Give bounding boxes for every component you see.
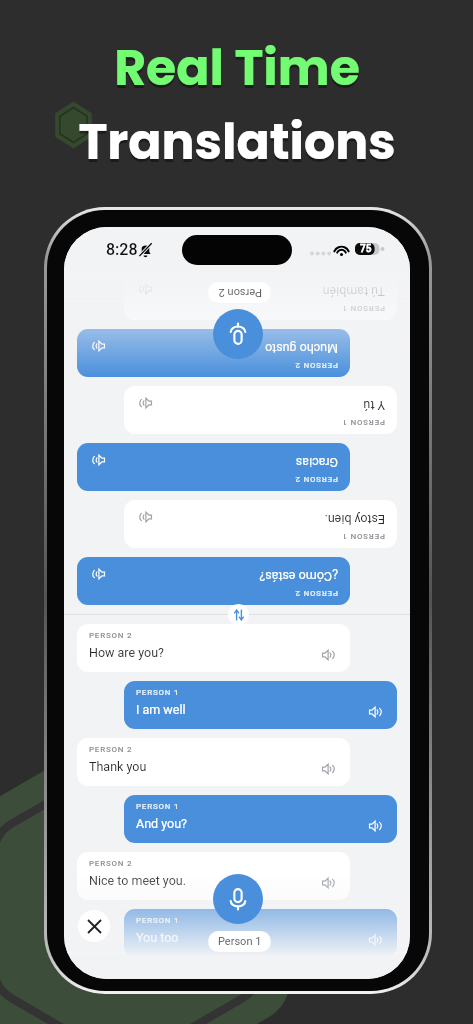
button[interactable]: PERSON 1	[124, 909, 397, 957]
staticText: PERSON 1	[136, 688, 180, 697]
staticText: Real Time	[114, 37, 360, 106]
button[interactable]: PERSON 2	[77, 329, 350, 377]
button[interactable]: Person 2	[208, 282, 271, 303]
staticText: Real Time	[114, 34, 360, 103]
button[interactable]: PERSON 2	[77, 557, 350, 605]
staticText: Person 1	[218, 935, 262, 948]
staticText: Gracias	[295, 455, 338, 470]
button[interactable]: Close	[78, 910, 110, 942]
button[interactable]: PERSON 1	[124, 681, 397, 729]
staticText: PERSON 2	[294, 361, 338, 370]
staticText: PERSON 1	[341, 418, 385, 427]
button[interactable]: Person 1	[208, 931, 271, 952]
button[interactable]: PERSON 2	[77, 738, 350, 786]
staticText: Translations	[78, 111, 396, 180]
staticText: ¿Cómo estás?	[259, 569, 338, 584]
staticText: Tú también	[322, 284, 385, 299]
button[interactable]: PERSON 1	[124, 386, 397, 434]
staticText: PERSON 2	[89, 631, 133, 640]
button[interactable]: Record voice	[213, 309, 263, 359]
staticText: PERSON 1	[136, 802, 180, 811]
button[interactable]: PERSON 2	[77, 443, 350, 491]
button[interactable]: PERSON 1	[124, 272, 397, 320]
staticText: Mucho gusto	[265, 341, 338, 356]
staticText: 8:28	[106, 240, 138, 259]
staticText: Translations	[78, 108, 396, 177]
staticText: Thank you	[89, 759, 147, 774]
staticText: PERSON 1	[136, 916, 180, 925]
button[interactable]: Swap languages	[228, 604, 249, 625]
staticText: 75	[360, 243, 372, 255]
staticText: Nice to meet you.	[89, 873, 186, 888]
staticText: Estoy bien.	[324, 512, 385, 527]
button[interactable]: PERSON 1	[124, 500, 397, 548]
button[interactable]: PERSON 2	[77, 852, 350, 900]
button[interactable]: PERSON 1	[124, 795, 397, 843]
staticText: You too	[136, 930, 179, 945]
staticText: PERSON 2	[294, 589, 338, 598]
staticText: PERSON 2	[89, 745, 133, 754]
staticText: PERSON 2	[294, 475, 338, 484]
staticText: And you?	[136, 816, 187, 831]
staticText: Person 2	[218, 286, 262, 299]
button[interactable]: PERSON 2	[77, 624, 350, 672]
staticText: I am well	[136, 702, 186, 717]
button[interactable]: Record voice	[213, 874, 263, 924]
staticText: PERSON 2	[89, 859, 133, 868]
staticText: How are you?	[89, 645, 164, 660]
staticText: Y tú	[363, 398, 385, 413]
staticText: PERSON 1	[341, 304, 385, 313]
staticText: PERSON 1	[341, 532, 385, 541]
